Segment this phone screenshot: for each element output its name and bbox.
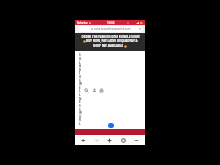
button[interactable]: More <box>132 136 141 145</box>
staticText: L <box>79 89 81 93</box>
staticText: N <box>79 97 82 101</box>
staticText: S <box>79 108 81 112</box>
staticText: S <box>79 104 81 108</box>
button[interactable]: Cart <box>99 88 104 93</box>
button[interactable]: ORDER THE FAMOUS GIY4 BUNDLE NOW! <box>75 33 145 51</box>
staticText: 10:04 <box>107 21 115 25</box>
staticText: L <box>79 122 81 126</box>
button[interactable]: Home <box>105 136 114 145</box>
staticText: L <box>79 61 81 65</box>
staticText: E <box>79 86 81 90</box>
staticText: BUY NOW, PAY LATER W/QUADPAY & <box>86 39 138 43</box>
button[interactable]: Search <box>84 88 89 93</box>
button[interactable]: Back <box>79 136 88 145</box>
button[interactable]: Tabs <box>119 136 128 145</box>
staticText: E <box>79 100 81 104</box>
staticText: SHOP PAY AVAILABLE <box>93 44 124 48</box>
staticText: L <box>79 93 81 97</box>
staticText: Solarius <box>77 21 88 25</box>
staticText: I <box>79 71 81 75</box>
staticText: S <box>79 79 81 83</box>
button[interactable]: Account <box>92 88 97 93</box>
staticText: R <box>79 68 81 72</box>
button[interactable]: Forward <box>92 136 101 145</box>
staticText: solariuswellnessworld.com <box>94 27 131 31</box>
staticText: O <box>79 115 82 119</box>
staticText: ORDER THE FAMOUS GIY4 BUNDLE NOW! <box>81 35 140 39</box>
staticText: S <box>79 53 81 57</box>
staticText: W <box>79 82 82 86</box>
staticText: A <box>79 64 82 68</box>
staticText: R <box>79 118 81 122</box>
staticText: W <box>79 111 82 115</box>
button[interactable]: solariuswellnessworld.com <box>78 26 142 32</box>
staticText: U <box>79 75 82 79</box>
staticText: O <box>79 57 82 61</box>
